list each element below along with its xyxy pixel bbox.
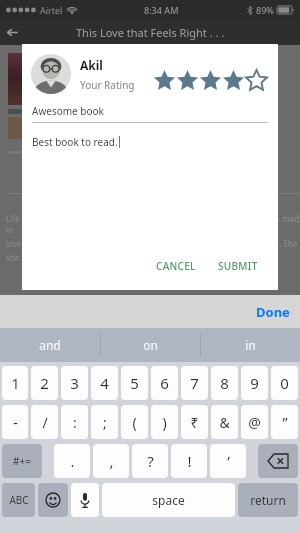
staticText: 2 — [40, 373, 49, 393]
staticText: ) — [162, 413, 167, 432]
staticText: love with her. “I will never stop loving… — [6, 238, 298, 249]
staticText: space — [152, 492, 185, 508]
staticText: 4 — [100, 373, 109, 393]
staticText: Akil — [80, 57, 103, 73]
button[interactable]: : — [61, 405, 88, 439]
staticText: 5 — [130, 373, 139, 393]
staticText: ” — [282, 413, 288, 432]
button[interactable]: ; — [91, 405, 118, 439]
button[interactable]: Done — [246, 297, 300, 327]
staticText: Awesome book — [32, 104, 104, 118]
staticText: 89% — [256, 4, 274, 16]
button[interactable]: . — [54, 444, 90, 478]
staticText: / — [42, 413, 48, 432]
button[interactable]: Awesome book — [32, 104, 268, 123]
staticText: 3 — [70, 373, 79, 393]
button[interactable]: #+= — [2, 444, 42, 478]
button[interactable]: 9 — [241, 366, 268, 400]
staticText: 0 — [280, 373, 289, 393]
staticText: return — [250, 492, 286, 508]
button[interactable]: 7 — [181, 366, 208, 400]
staticText: ! — [187, 451, 192, 471]
staticText: ; — [103, 413, 107, 432]
button[interactable]: @ — [241, 405, 268, 439]
staticText: 8:34 AM — [144, 4, 179, 16]
staticText: Done — [256, 303, 290, 321]
button[interactable]: 0 — [271, 366, 298, 400]
staticText: 1 — [11, 373, 20, 393]
button[interactable]: Emoji — [38, 483, 68, 517]
staticText: 9 — [250, 373, 259, 393]
staticText: This Love that Feels Right . . . — [76, 25, 225, 40]
button[interactable]: SUBMIT — [212, 255, 264, 277]
button[interactable]: 6 — [151, 366, 178, 400]
staticText: and — [39, 337, 61, 353]
button[interactable]: CANCEL — [150, 255, 202, 277]
button[interactable]: ₹ — [181, 405, 208, 439]
button[interactable]: ’ — [210, 444, 246, 478]
button[interactable]: ? — [132, 444, 168, 478]
staticText: & — [219, 413, 230, 432]
staticText: 6 — [160, 373, 169, 393]
button[interactable]: Backspace — [258, 444, 298, 478]
staticText: ’ — [227, 451, 230, 471]
staticText: Your Rating — [80, 78, 135, 92]
staticText: 8 — [220, 373, 229, 393]
staticText: SUBMIT — [218, 259, 258, 273]
button[interactable]: 2 — [31, 366, 58, 400]
button[interactable]: Voice input — [71, 483, 99, 517]
button[interactable]: return — [238, 483, 298, 517]
staticText: in — [245, 337, 256, 353]
staticText: ( — [132, 413, 137, 432]
staticText: . — [70, 451, 75, 471]
staticText: : — [73, 413, 77, 432]
button[interactable]: Best book to read. — [32, 135, 268, 149]
button[interactable]: ! — [171, 444, 207, 478]
button[interactable]: 1 — [2, 366, 28, 400]
staticText: on — [143, 337, 158, 353]
staticText: ₹ — [190, 413, 199, 432]
staticText: ? — [147, 451, 154, 471]
button[interactable]: Back — [0, 20, 25, 45]
button[interactable]: ( — [121, 405, 148, 439]
staticText: Airtel — [40, 4, 63, 16]
staticText: , — [109, 451, 114, 471]
staticText: @ — [248, 413, 261, 432]
button[interactable]: 4 — [91, 366, 118, 400]
staticText: ABC — [9, 493, 29, 507]
staticText: #+= — [13, 454, 31, 468]
staticText: - — [13, 413, 18, 432]
button[interactable]: in — [201, 328, 300, 362]
button[interactable]: Rating 4 of 5 stars — [153, 69, 268, 92]
button[interactable]: - — [2, 405, 28, 439]
button[interactable]: & — [211, 405, 238, 439]
button[interactable]: space — [102, 483, 235, 517]
button[interactable]: ” — [271, 405, 298, 439]
button[interactable]: / — [31, 405, 58, 439]
button[interactable]: on — [101, 328, 200, 362]
staticText: CANCEL — [156, 259, 196, 273]
button[interactable]: and — [0, 328, 100, 362]
staticText: 7 — [190, 373, 199, 393]
button[interactable]: ABC — [2, 483, 35, 517]
button[interactable]: , — [93, 444, 129, 478]
button[interactable]: 3 — [61, 366, 88, 400]
staticText: Life could have been simpler if only she… — [6, 213, 300, 235]
staticText: she had only smiled back at him that day… — [6, 252, 161, 263]
button[interactable]: 5 — [121, 366, 148, 400]
button[interactable]: ) — [151, 405, 178, 439]
button[interactable]: 8 — [211, 366, 238, 400]
staticText: Best book to read. — [32, 135, 118, 149]
